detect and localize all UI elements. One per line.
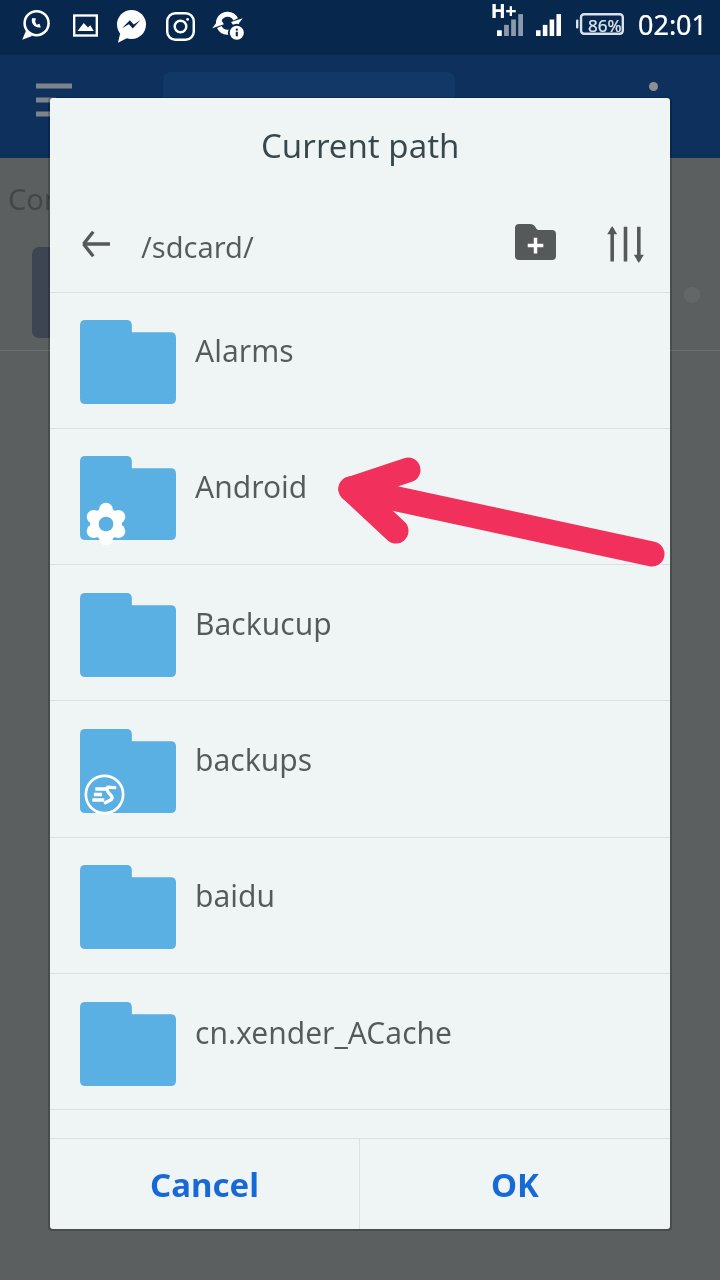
button[interactable]: OK <box>360 1139 670 1229</box>
button[interactable]: Android <box>50 428 670 564</box>
staticText: Android <box>195 466 308 507</box>
staticText: Backucup <box>195 603 332 644</box>
button[interactable]: cn.xender_ACache <box>50 974 670 1110</box>
staticText: Alarms <box>195 330 294 371</box>
staticText: OK <box>491 1162 540 1207</box>
staticText: 86% <box>588 14 622 36</box>
staticText: 02:01 <box>638 6 708 43</box>
staticText: Content <box>8 179 118 218</box>
button[interactable]: Backucup <box>50 565 670 701</box>
staticText: backups <box>195 739 313 780</box>
staticText: /sdcard/ <box>141 227 254 266</box>
button[interactable]: New folder <box>509 216 561 268</box>
staticText: Cancel <box>150 1162 259 1207</box>
button[interactable]: baidu <box>50 837 670 973</box>
staticText: H+ <box>491 0 517 24</box>
staticText: cn.xender_ACache <box>195 1012 453 1053</box>
button[interactable]: Sort <box>597 216 653 272</box>
button[interactable]: backups <box>50 701 670 837</box>
button[interactable]: Cancel <box>50 1139 359 1229</box>
staticText: baidu <box>195 875 276 916</box>
button[interactable]: Alarms <box>50 292 670 428</box>
button[interactable]: Back <box>74 222 118 266</box>
staticText: Current path <box>261 123 460 168</box>
